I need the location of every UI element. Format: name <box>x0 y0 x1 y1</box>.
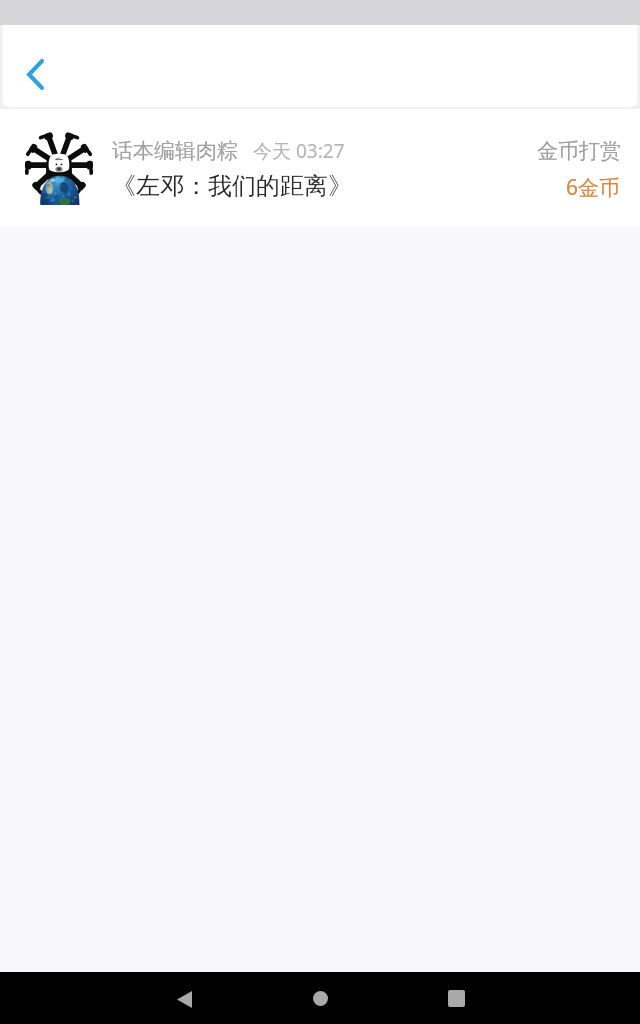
button[interactable]: 话本编辑肉粽 <box>0 109 640 227</box>
staticText: 金币打赏 <box>537 138 621 164</box>
staticText: 6金币 <box>566 173 621 202</box>
staticText: 《左邓：我们的距离》 <box>112 171 352 201</box>
button[interactable]: Back <box>160 974 208 1022</box>
button[interactable]: Home <box>296 974 344 1022</box>
staticText: 话本编辑肉粽 <box>112 138 238 164</box>
staticText: 今天 03:27 <box>253 138 345 164</box>
button[interactable]: Recents <box>432 974 480 1022</box>
button[interactable]: Back <box>7 47 63 101</box>
